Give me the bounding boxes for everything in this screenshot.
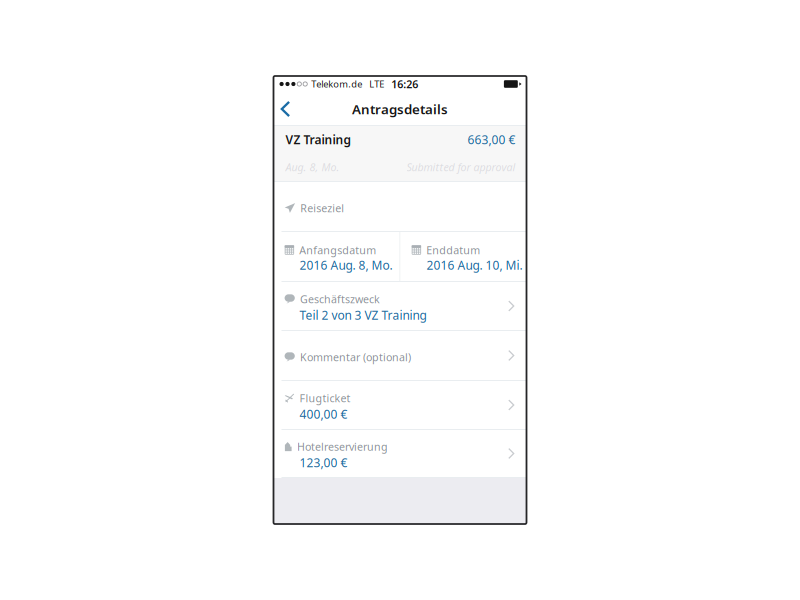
button[interactable]: Anfangsdatum: [273, 232, 399, 281]
staticText: Anfangsdatum: [299, 243, 376, 257]
staticText: Teil 2 von 3 VZ Training: [299, 307, 426, 323]
button[interactable]: Geschäftszweck: [273, 282, 526, 330]
button[interactable]: Reiseziel: [273, 182, 526, 231]
staticText: 400,00 €: [299, 406, 347, 422]
button[interactable]: Kommentar (optional): [273, 331, 526, 380]
button[interactable]: Enddatum: [400, 232, 526, 281]
staticText: Telekom.de: [311, 78, 362, 90]
staticText: Enddatum: [426, 243, 480, 257]
staticText: Antragsdetails: [352, 100, 448, 118]
staticText: 16:26: [391, 77, 418, 91]
staticText: 123,00 €: [299, 455, 347, 470]
staticText: VZ Training: [285, 131, 351, 147]
staticText: Submitted for approval: [406, 160, 515, 174]
staticText: Flugticket: [299, 391, 350, 405]
button[interactable]: Back: [273, 93, 304, 125]
staticText: 2016 Aug. 10, Mi.: [426, 257, 522, 273]
staticText: Kommentar (optional): [300, 350, 411, 364]
staticText: Aug. 8, Mo.: [285, 160, 339, 174]
staticText: LTE: [369, 78, 384, 90]
staticText: Reiseziel: [300, 201, 344, 215]
button[interactable]: Flugticket: [273, 381, 526, 429]
staticText: Geschäftszweck: [300, 292, 380, 306]
button[interactable]: Hotelreservierung: [273, 430, 526, 477]
staticText: Hotelreservierung: [297, 439, 388, 454]
staticText: 2016 Aug. 8, Mo.: [299, 257, 392, 273]
staticText: 663,00 €: [467, 131, 515, 147]
